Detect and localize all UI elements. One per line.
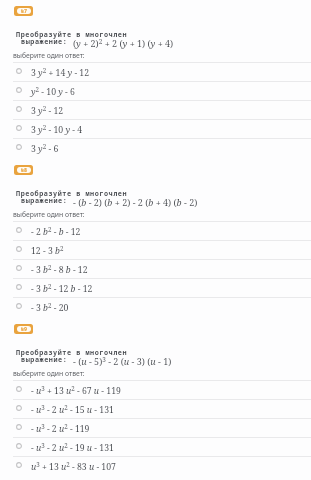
staticText: 3 y2 - 12 — [31, 104, 64, 117]
staticText: - (u - 5)3 - 2 (u - 3) (u - 1) — [73, 355, 172, 368]
staticText: выберите один ответ: — [13, 210, 85, 219]
button[interactable]: - 3 b2 - 8 b - 12 — [0, 259, 311, 278]
button[interactable]: - u3 - 2 u2 - 19 u - 131 — [0, 437, 311, 456]
staticText: Преобразуйте в многочлен — [16, 189, 128, 198]
staticText: - 3 b2 - 8 b - 12 — [31, 263, 88, 276]
button[interactable]: 3 y2 - 6 — [0, 138, 311, 157]
staticText: - u3 - 2 u2 - 19 u - 131 — [31, 441, 114, 454]
staticText: №9 — [21, 326, 28, 332]
button[interactable]: Вопрос №8 — [14, 165, 33, 175]
button[interactable]: u3 + 13 u2 - 83 u - 107 — [0, 456, 311, 475]
staticText: - 3 b2 - 12 b - 12 — [31, 282, 93, 295]
staticText: Преобразуйте в многочлен — [16, 348, 128, 357]
button[interactable]: - 3 b2 - 20 — [0, 297, 311, 316]
staticText: - 3 b2 - 20 — [31, 301, 69, 314]
staticText: Преобразуйте в многочлен — [16, 30, 128, 39]
staticText: выражение: — [21, 37, 68, 46]
button[interactable]: 3 y2 - 10 y - 4 — [0, 119, 311, 138]
button[interactable]: 12 - 3 b2 — [0, 240, 311, 259]
button[interactable]: Вопрос №9 — [14, 324, 33, 334]
button[interactable]: - 3 b2 - 12 b - 12 — [0, 278, 311, 297]
staticText: (y + 2)2 + 2 (y + 1) (y + 4) — [73, 37, 174, 50]
button[interactable]: y2 - 10 y - 6 — [0, 81, 311, 100]
staticText: 3 y2 + 14 y - 12 — [31, 66, 90, 79]
staticText: №8 — [21, 167, 28, 173]
staticText: выберите один ответ: — [13, 51, 85, 60]
staticText: №7 — [21, 8, 28, 14]
button[interactable]: - u3 - 2 u2 - 15 u - 131 — [0, 399, 311, 418]
button[interactable]: - 2 b2 - b - 12 — [0, 221, 311, 240]
staticText: 12 - 3 b2 — [31, 244, 64, 257]
staticText: 3 y2 - 6 — [31, 142, 59, 155]
staticText: выражение: — [21, 355, 68, 364]
staticText: - u3 - 2 u2 - 119 — [31, 422, 90, 435]
staticText: - u3 - 2 u2 - 15 u - 131 — [31, 403, 114, 416]
staticText: u3 + 13 u2 - 83 u - 107 — [31, 460, 116, 473]
staticText: - (b - 2) (b + 2) - 2 (b + 4) (b - 2) — [73, 196, 198, 208]
button[interactable]: Вопрос №7 — [14, 6, 33, 16]
staticText: - u3 + 13 u2 - 67 u - 119 — [31, 384, 121, 397]
button[interactable]: - u3 + 13 u2 - 67 u - 119 — [0, 380, 311, 399]
staticText: - 2 b2 - b - 12 — [31, 225, 81, 238]
button[interactable]: 3 y2 - 12 — [0, 100, 311, 119]
staticText: выражение: — [21, 196, 68, 205]
staticText: y2 - 10 y - 6 — [31, 85, 75, 98]
button[interactable]: 3 y2 + 14 y - 12 — [0, 62, 311, 81]
staticText: 3 y2 - 10 y - 4 — [31, 123, 83, 136]
staticText: выберите один ответ: — [13, 369, 85, 378]
button[interactable]: - u3 - 2 u2 - 119 — [0, 418, 311, 437]
